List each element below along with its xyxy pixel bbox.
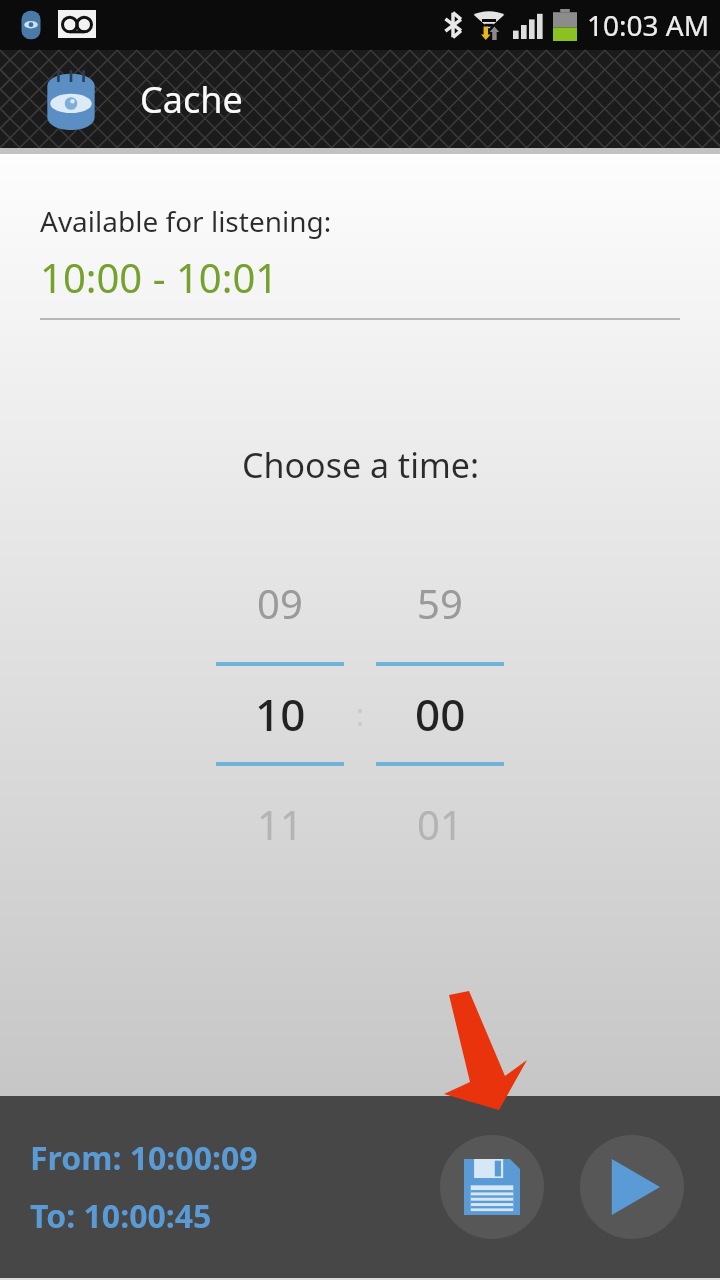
staticText: From: 10:00:09 xyxy=(30,1136,258,1180)
staticText: To: 10:00:45 xyxy=(30,1194,212,1238)
staticText: 59 xyxy=(417,576,463,630)
staticText: 10:00 - 10:01 xyxy=(40,250,279,304)
staticText: 11 xyxy=(257,797,303,851)
staticText: 01 xyxy=(417,797,463,851)
staticText: 10:03 AM xyxy=(587,6,710,44)
button[interactable]: Save xyxy=(440,1135,544,1239)
button[interactable]: Play xyxy=(580,1135,684,1239)
button[interactable]: 59 xyxy=(376,544,504,882)
staticText: 09 xyxy=(257,576,303,630)
staticText: : xyxy=(356,694,365,735)
staticText: 00 xyxy=(415,684,466,744)
staticText: 10 xyxy=(255,684,306,744)
button[interactable]: 09 xyxy=(216,544,344,882)
staticText: Available for listening: xyxy=(40,202,332,240)
staticText: Choose a time: xyxy=(242,442,479,488)
staticText: Cache xyxy=(140,75,243,124)
